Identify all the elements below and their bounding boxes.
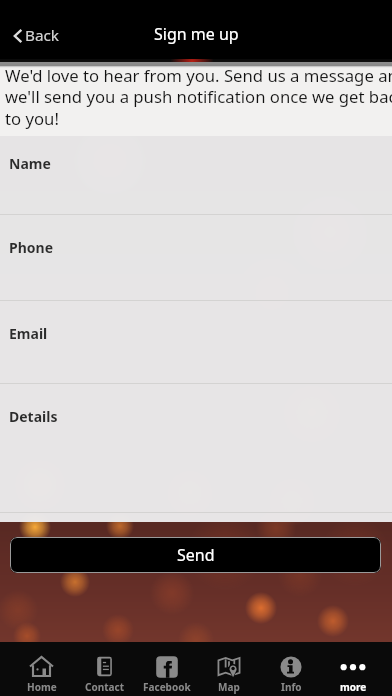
staticText: more xyxy=(340,680,367,694)
staticText: Send xyxy=(177,544,215,566)
button[interactable]: Send xyxy=(10,537,381,573)
button[interactable]: Back xyxy=(11,22,63,49)
staticText: Home xyxy=(27,680,57,694)
staticText: Details xyxy=(9,407,58,426)
button[interactable]: Details xyxy=(0,384,392,513)
staticText: Name xyxy=(9,154,51,173)
button[interactable]: Phone xyxy=(0,215,392,301)
button[interactable]: Email xyxy=(0,301,392,384)
button[interactable]: Home xyxy=(10,642,73,696)
button[interactable]: Facebook xyxy=(136,642,198,696)
staticText: We'd love to hear from you. Send us a me… xyxy=(5,64,392,130)
button[interactable]: Info xyxy=(260,642,322,696)
staticText: Contact xyxy=(85,680,124,694)
staticText: Phone xyxy=(9,238,54,257)
staticText: Info xyxy=(281,680,302,694)
button[interactable]: Contact xyxy=(73,642,136,696)
staticText: Sign me up xyxy=(154,23,239,45)
staticText: Map xyxy=(218,680,240,694)
button[interactable]: Map xyxy=(198,642,260,696)
button[interactable]: Name xyxy=(0,136,392,215)
staticText: Facebook xyxy=(143,680,191,694)
staticText: Back xyxy=(25,25,60,46)
button[interactable]: more xyxy=(322,642,384,696)
staticText: Email xyxy=(9,324,48,343)
